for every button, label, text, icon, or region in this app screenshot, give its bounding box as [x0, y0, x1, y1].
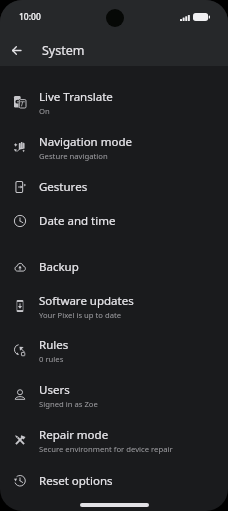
staticText: Date and time	[39, 213, 116, 229]
staticText: Software updates	[39, 293, 134, 309]
staticText: Rules	[39, 337, 69, 353]
staticText: Live Translate	[39, 89, 113, 105]
button[interactable]: Rules	[0, 327, 228, 373]
staticText: Secure environment for device repair	[39, 444, 173, 454]
button[interactable]: Software updates	[0, 283, 228, 329]
staticText: On	[39, 106, 50, 116]
button[interactable]: Live Translate	[0, 79, 228, 125]
staticText: System	[42, 42, 85, 59]
staticText: Backup	[39, 259, 79, 275]
staticText: 0 rules	[39, 354, 64, 364]
button[interactable]: Navigation mode	[0, 124, 228, 170]
staticText: Signed in as Zoe	[39, 399, 98, 409]
button[interactable]: Users	[0, 372, 228, 418]
button[interactable]: Gestures	[0, 170, 228, 204]
staticText: Gestures	[39, 179, 88, 195]
staticText: Your Pixel is up to date	[39, 310, 122, 320]
staticText: Navigation mode	[39, 134, 132, 150]
staticText: Reset options	[39, 473, 113, 489]
staticText: Repair mode	[39, 427, 109, 443]
button[interactable]: Back	[4, 38, 28, 62]
staticText: Users	[39, 382, 70, 398]
staticText: Gesture navigation	[39, 151, 108, 161]
button[interactable]: Reset options	[0, 464, 228, 498]
staticText: 10:00	[19, 11, 41, 23]
button[interactable]: Date and time	[0, 204, 228, 238]
button[interactable]: Repair mode	[0, 417, 228, 463]
button[interactable]: Backup	[0, 250, 228, 284]
